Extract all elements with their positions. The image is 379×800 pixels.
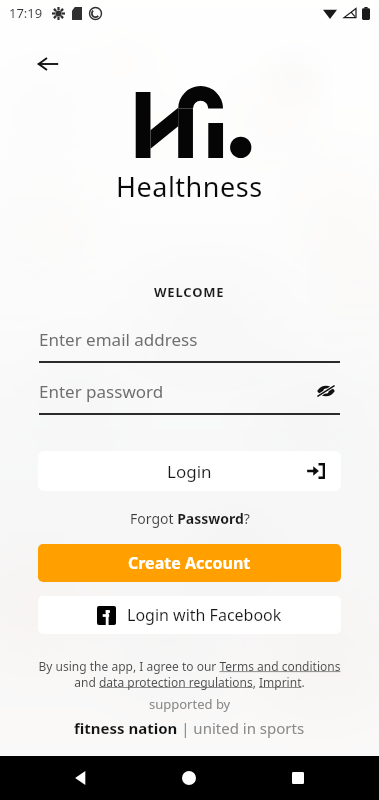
staticText: supported by [149, 695, 231, 713]
staticText: fitness nation | united in sports [74, 718, 305, 738]
button[interactable]: Create Account [38, 544, 341, 582]
button[interactable]: Enter email address [39, 321, 340, 363]
staticText: Login [167, 460, 212, 483]
button[interactable]: Login [38, 451, 341, 491]
staticText: Healthness [116, 168, 263, 205]
button[interactable]: Enter password [39, 373, 340, 415]
button[interactable]: Home [167, 756, 211, 800]
button[interactable]: By using the app, I agree to our Terms a… [32, 658, 347, 690]
button[interactable]: Login with Facebook [38, 596, 341, 634]
staticText: Forgot Password? [130, 509, 250, 528]
staticText: 17:19 [9, 4, 43, 22]
staticText: Enter email address [39, 328, 198, 351]
staticText: WELCOME [154, 283, 225, 301]
button[interactable]: Show password [312, 377, 340, 405]
button[interactable]: Back [28, 44, 68, 84]
button[interactable]: Back [58, 756, 102, 800]
staticText: Create Account [128, 552, 251, 574]
button[interactable]: Forgot Password? [122, 507, 258, 530]
staticText: Login with Facebook [127, 604, 282, 626]
button[interactable]: Recent apps [276, 756, 320, 800]
staticText: Enter password [39, 380, 164, 403]
